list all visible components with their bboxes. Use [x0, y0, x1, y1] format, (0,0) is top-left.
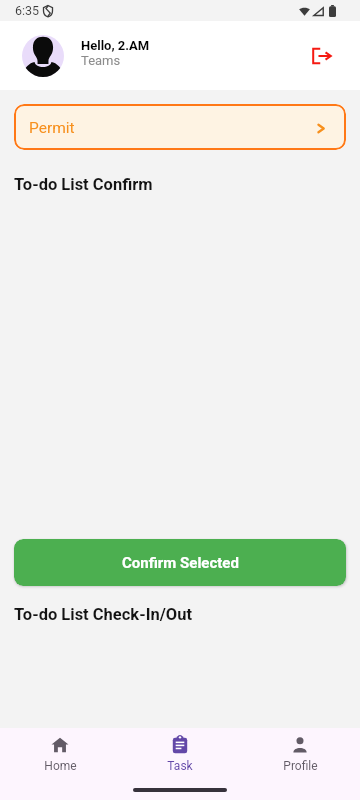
- staticText: Profile: [283, 759, 318, 773]
- staticText: Teams: [81, 53, 121, 68]
- staticText: Task: [167, 759, 193, 773]
- staticText: Confirm Selected: [122, 554, 239, 572]
- button[interactable]: Profile: [240, 728, 360, 781]
- button[interactable]: Permit: [14, 104, 346, 150]
- button[interactable]: Logout: [300, 34, 344, 78]
- staticText: 6:35: [15, 3, 40, 18]
- button[interactable]: Confirm Selected: [14, 539, 346, 586]
- staticText: Permit: [29, 119, 75, 137]
- staticText: To-do List Check-In/Out: [14, 605, 193, 624]
- staticText: To-do List Confirm: [14, 175, 153, 194]
- button[interactable]: Task: [120, 728, 240, 781]
- button[interactable]: Home: [0, 728, 120, 781]
- staticText: Home: [44, 759, 77, 773]
- staticText: Hello, 2.AM: [81, 38, 150, 53]
